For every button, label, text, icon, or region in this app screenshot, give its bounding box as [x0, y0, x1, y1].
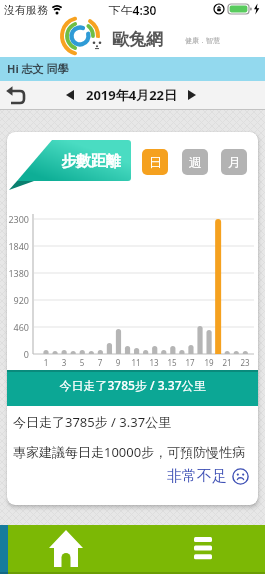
staticText: 9: [110, 357, 126, 367]
button[interactable]: 2019年4月22日: [56, 83, 206, 107]
button[interactable]: [2, 82, 30, 108]
staticText: 1380: [7, 267, 29, 278]
button[interactable]: 月: [221, 149, 247, 175]
staticText: 專家建議每日走10000步，可預防慢性病: [13, 443, 258, 460]
staticText: 3: [56, 357, 72, 367]
staticText: 非常不足: [167, 467, 227, 486]
button[interactable]: [132, 525, 265, 574]
staticText: 步數距離: [51, 152, 131, 171]
staticText: 460: [7, 321, 29, 332]
staticText: 0: [7, 348, 29, 359]
staticText: 920: [7, 294, 29, 305]
staticText: 11: [128, 357, 144, 367]
staticText: Hi 志文 同學: [7, 61, 127, 76]
staticText: 17: [182, 357, 198, 367]
staticText: 沒有服務: [4, 3, 50, 15]
staticText: 5: [74, 357, 90, 367]
staticText: 月: [228, 154, 241, 170]
staticText: 19: [201, 357, 217, 367]
staticText: 今日走了3785步 / 3.37公里: [13, 413, 253, 430]
button[interactable]: 週: [182, 149, 208, 175]
staticText: 下午4:30: [100, 2, 165, 15]
staticText: 23: [237, 357, 253, 367]
staticText: 7: [92, 357, 108, 367]
button[interactable]: 日: [142, 149, 168, 175]
staticText: 日: [149, 154, 162, 170]
button[interactable]: 非常不足: [125, 466, 249, 487]
staticText: 15: [164, 357, 180, 367]
staticText: 21: [219, 357, 235, 367]
staticText: 1840: [7, 240, 29, 251]
staticText: 今日走了3785步 / 3.37公里: [7, 377, 258, 393]
staticText: 13: [146, 357, 162, 367]
staticText: 2019年4月22日: [86, 86, 178, 104]
staticText: 健康．智慧: [185, 36, 230, 45]
staticText: 2300: [7, 213, 29, 224]
button[interactable]: [8, 525, 132, 574]
staticText: 1: [38, 357, 54, 367]
button[interactable]: 今日走了3785步 / 3.37公里: [7, 370, 258, 406]
staticText: 週: [189, 154, 202, 170]
staticText: 歐兔網: [112, 29, 174, 49]
